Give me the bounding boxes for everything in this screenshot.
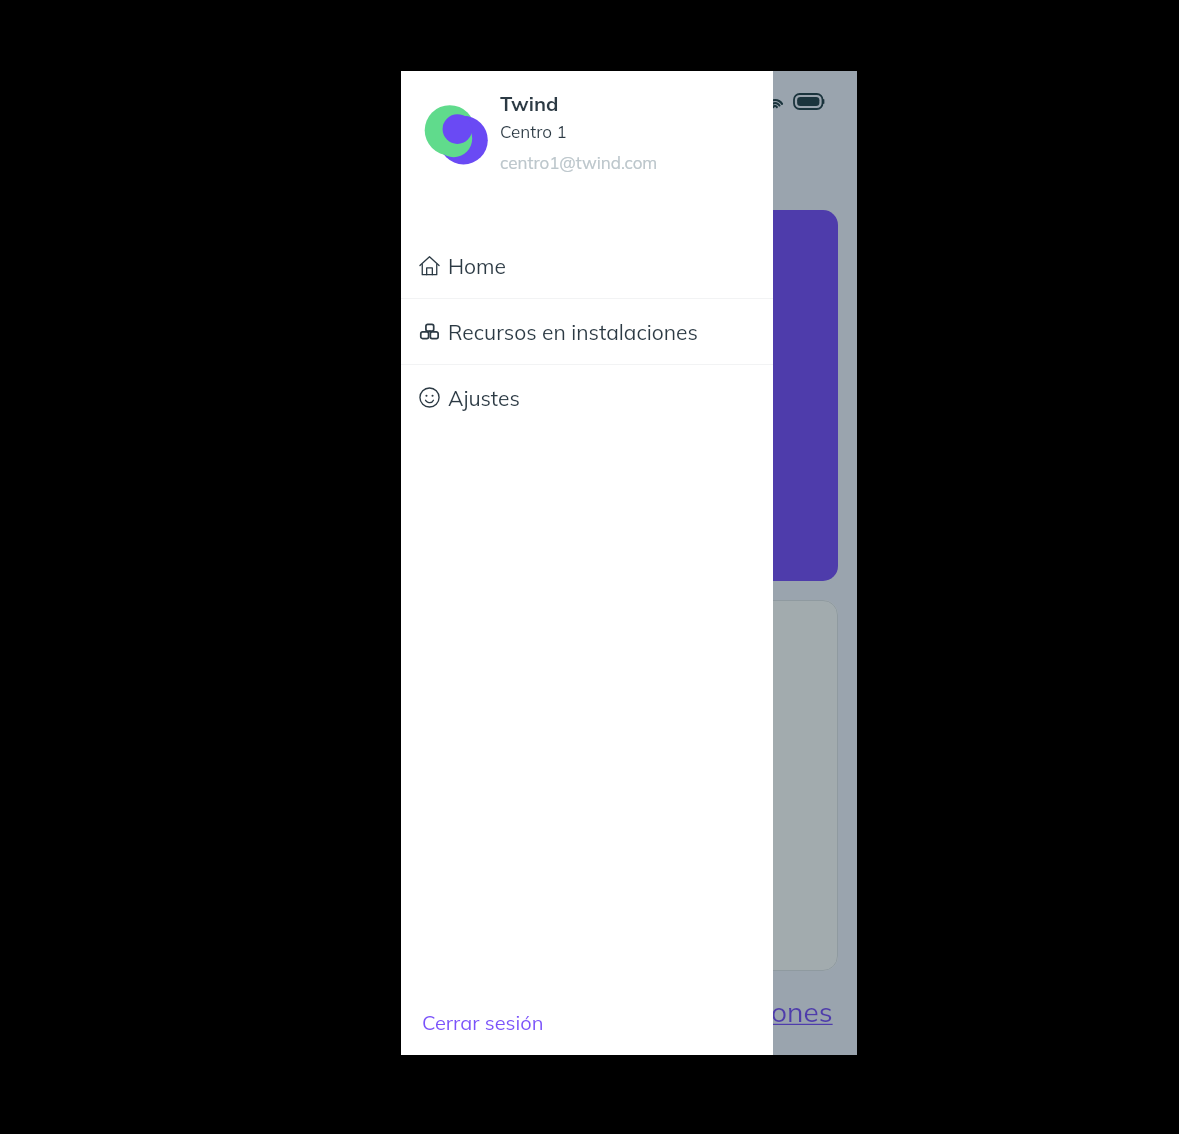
staticText: Twind xyxy=(500,91,559,116)
button[interactable]: Home xyxy=(401,233,773,298)
button[interactable]: Twind xyxy=(401,71,773,172)
button[interactable]: Cerrar sesión xyxy=(401,994,773,1055)
staticText: Centro 1 xyxy=(500,121,567,142)
button[interactable]: Ajustes xyxy=(401,365,773,430)
staticText: Ajustes xyxy=(448,385,520,411)
staticText: Ver todas las instalaciones xyxy=(488,994,833,1029)
staticText: Home xyxy=(448,253,506,279)
staticText: centro1@twind.com xyxy=(500,152,658,173)
staticText: Recursos en instalaciones xyxy=(448,319,698,345)
button[interactable]: Recursos en instalaciones xyxy=(401,299,773,364)
staticText: Cerrar sesión xyxy=(422,1010,544,1035)
